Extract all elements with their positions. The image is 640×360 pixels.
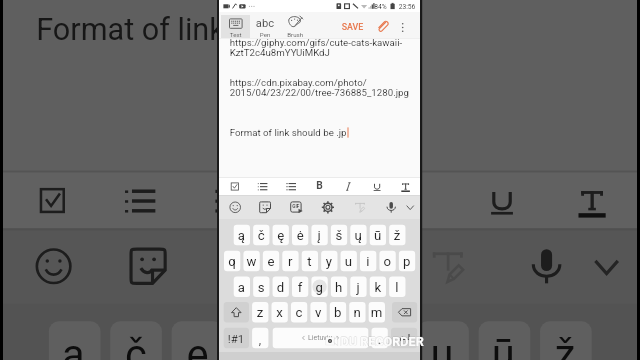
button[interactable]: Save <box>343 14 377 36</box>
button[interactable]: More options <box>400 14 418 36</box>
button[interactable]: Pen mode <box>256 13 286 38</box>
button[interactable]: Text mode <box>224 13 254 38</box>
button[interactable]: Brush mode <box>289 13 319 38</box>
button[interactable]: Attach file <box>378 14 398 36</box>
